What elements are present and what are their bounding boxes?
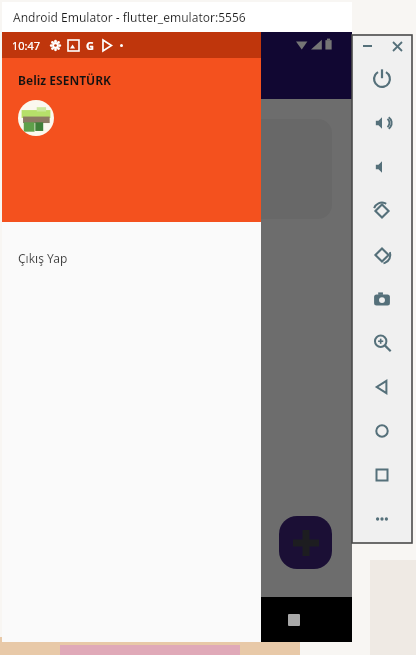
staticText: G: [86, 38, 94, 53]
button[interactable]: Çıkış Yap: [2, 234, 261, 282]
button[interactable]: Rotate right: [352, 233, 412, 277]
button[interactable]: More: [352, 497, 412, 541]
button[interactable]: Back: [352, 365, 412, 409]
button[interactable]: Add: [279, 516, 332, 569]
button[interactable]: [2, 32, 352, 597]
staticText: Android Emulator - flutter_emulator:5556: [13, 9, 246, 25]
button[interactable]: Recent apps: [235, 597, 352, 642]
button[interactable]: Close: [382, 35, 412, 57]
button[interactable]: Overview: [352, 453, 412, 497]
button[interactable]: Home: [352, 409, 412, 453]
button[interactable]: Volume down: [352, 145, 412, 189]
staticText: 10:47: [12, 38, 41, 53]
button[interactable]: Take screenshot: [352, 277, 412, 321]
button[interactable]: Zoom: [352, 321, 412, 365]
button[interactable]: Beliz ESENTÜRK: [2, 58, 261, 222]
button[interactable]: Rotate left: [352, 189, 412, 233]
button[interactable]: Volume up: [352, 101, 412, 145]
staticText: Beliz ESENTÜRK: [18, 72, 111, 88]
button[interactable]: Power: [352, 57, 412, 101]
button[interactable]: Minimize: [352, 35, 382, 57]
button[interactable]: [20, 119, 332, 219]
staticText: Çıkış Yap: [18, 250, 68, 266]
